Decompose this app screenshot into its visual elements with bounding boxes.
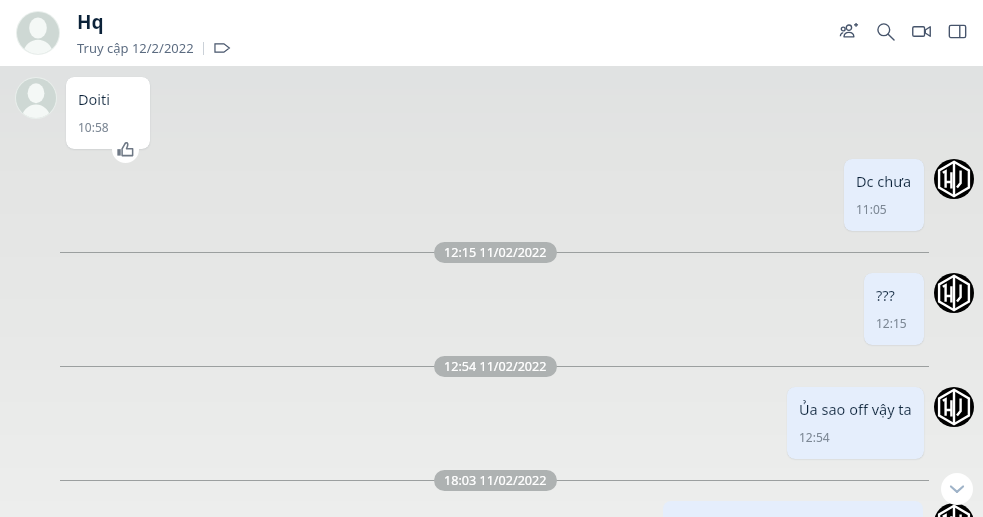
staticText: Hq xyxy=(77,9,104,35)
staticText: Doiti xyxy=(78,89,111,109)
button[interactable]: Hq avatar xyxy=(16,11,60,55)
button[interactable]: My avatar xyxy=(934,159,974,199)
button[interactable]: Tag xyxy=(213,39,231,57)
staticText: 12:15 xyxy=(876,315,907,331)
staticText: 12:54 xyxy=(799,429,830,445)
staticText: 11:05 xyxy=(856,201,887,217)
staticText: 12:54 11/02/2022 xyxy=(444,358,547,375)
button[interactable]: Toggle side panel xyxy=(943,17,971,45)
button[interactable]: 12:15 11/02/2022 xyxy=(434,242,557,263)
button[interactable]: Video call xyxy=(907,17,935,45)
staticText: 18:03 11/02/2022 xyxy=(444,472,547,489)
button[interactable]: ??? xyxy=(864,273,924,345)
button[interactable]: Ủa sao off vậy ta xyxy=(787,387,924,459)
button[interactable]: My avatar xyxy=(934,387,974,427)
button[interactable]: Add member xyxy=(835,17,863,45)
staticText: Truy cập 12/2/2022 xyxy=(77,39,194,57)
button[interactable]: Dc chưa xyxy=(844,159,924,231)
staticText: Dc chưa xyxy=(856,171,912,191)
button[interactable]: My avatar xyxy=(934,273,974,313)
button[interactable]: 18:03 11/02/2022 xyxy=(434,470,557,491)
staticText: Ủa sao off vậy ta xyxy=(799,399,912,419)
button[interactable]: Doiti xyxy=(66,77,150,149)
button[interactable]: Hq avatar xyxy=(15,77,57,119)
button[interactable]: Search xyxy=(871,17,899,45)
button[interactable]: 12:54 11/02/2022 xyxy=(434,356,557,377)
button[interactable]: Scroll to bottom xyxy=(941,473,973,505)
staticText: ??? xyxy=(876,285,895,305)
button[interactable]: Like reaction xyxy=(112,136,139,163)
staticText: 10:58 xyxy=(78,119,109,135)
staticText: 12:15 11/02/2022 xyxy=(444,244,547,261)
